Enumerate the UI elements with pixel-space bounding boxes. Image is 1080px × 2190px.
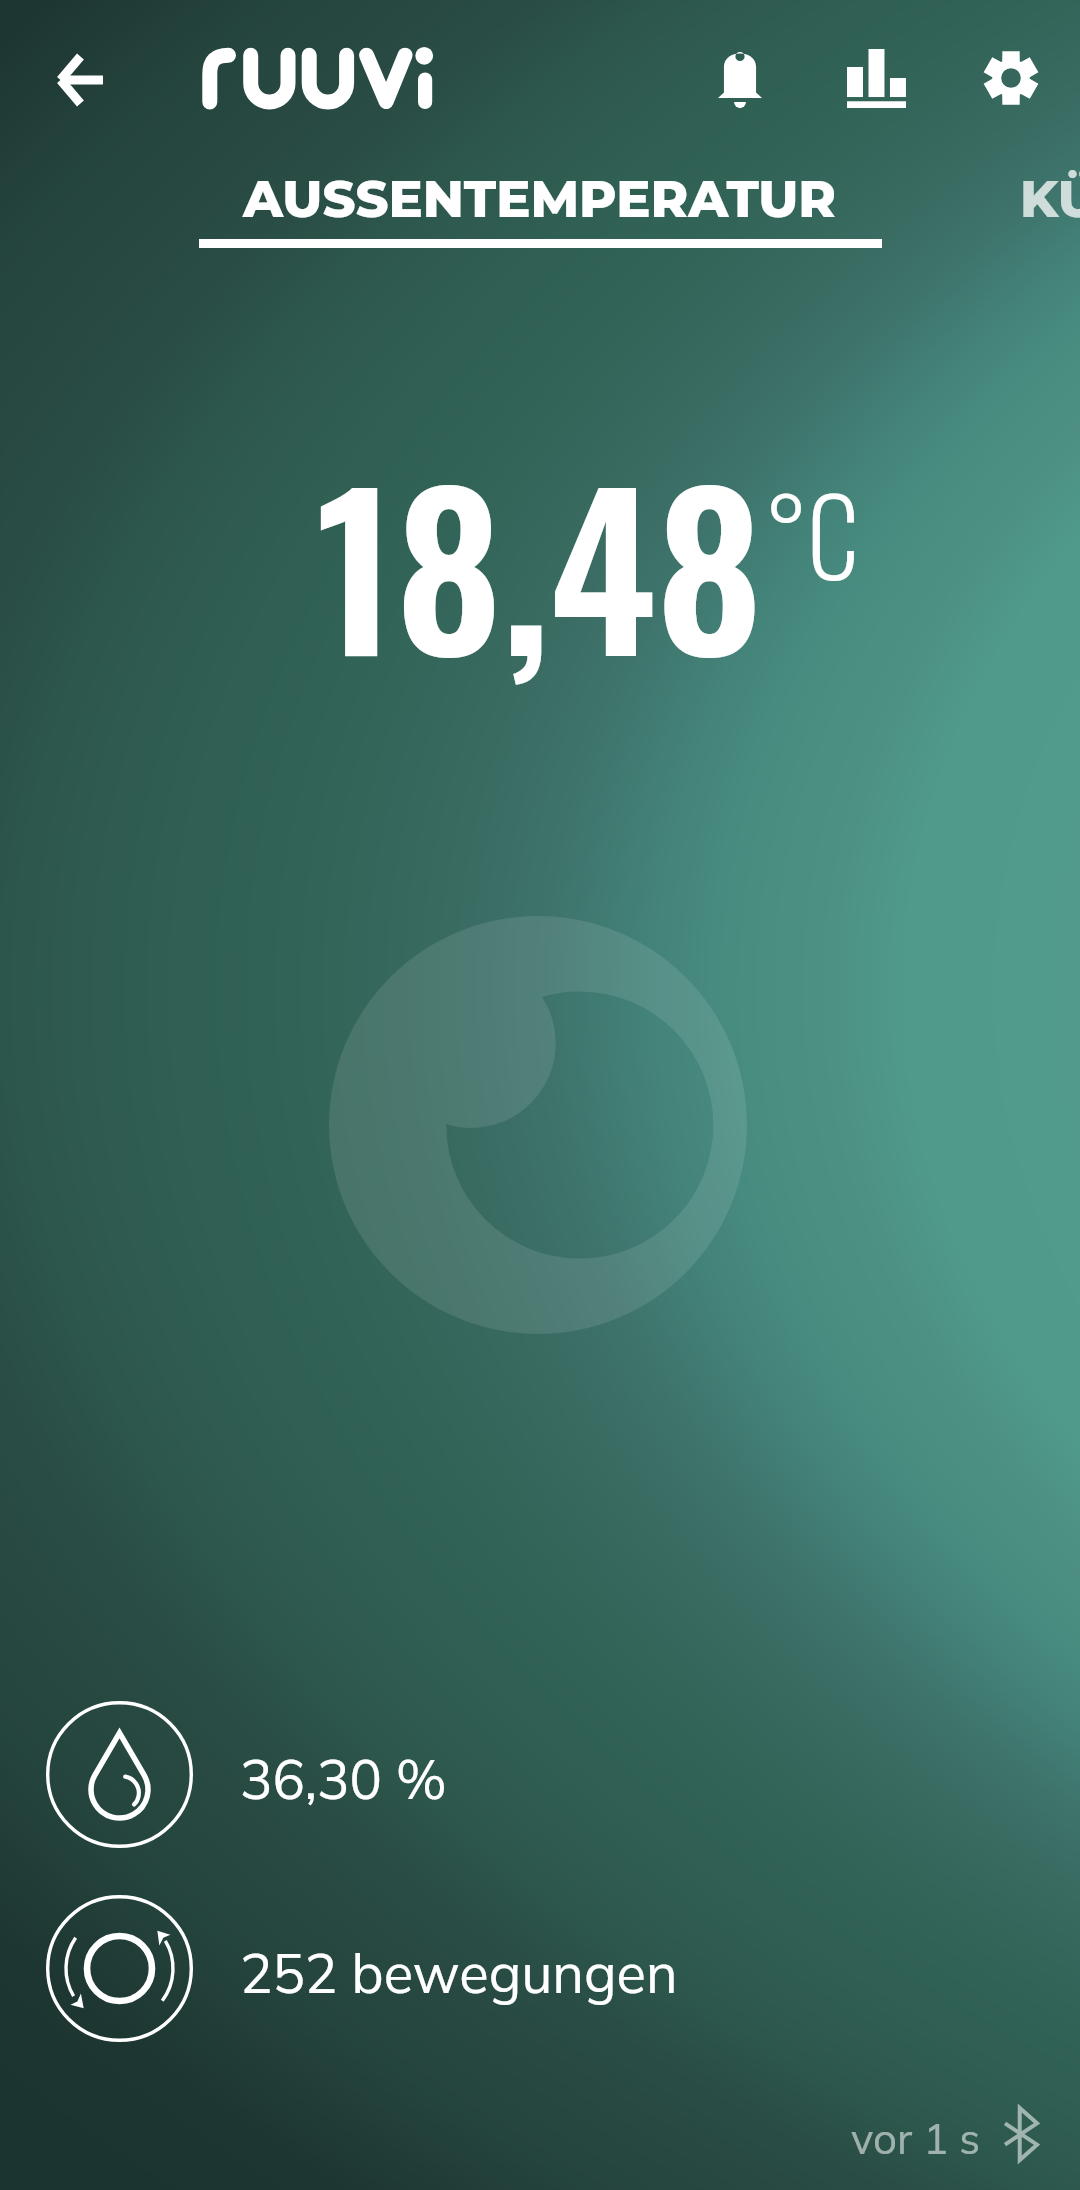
staticText: KÜCHE [1020,168,1080,230]
staticText: °C [765,455,859,611]
button[interactable]: Alerts [690,26,790,126]
staticText: 252 bewegungen [240,1939,678,2007]
staticText: AUSSENTEMPERATUR [243,168,836,230]
button[interactable]: AUSSENTEMPERATUR [199,150,882,250]
button[interactable]: Settings [961,26,1061,126]
button[interactable]: History [826,26,926,126]
button[interactable]: 36,30 % [30,1690,730,1860]
button[interactable]: 252 bewegungen [30,1884,730,2054]
staticText: vor 1 s [851,2112,981,2165]
button[interactable]: Back [30,30,130,130]
staticText: 36,30 % [240,1745,447,1813]
button[interactable]: KÜCHE [1000,150,1080,250]
staticText: 18,48 [316,409,763,716]
